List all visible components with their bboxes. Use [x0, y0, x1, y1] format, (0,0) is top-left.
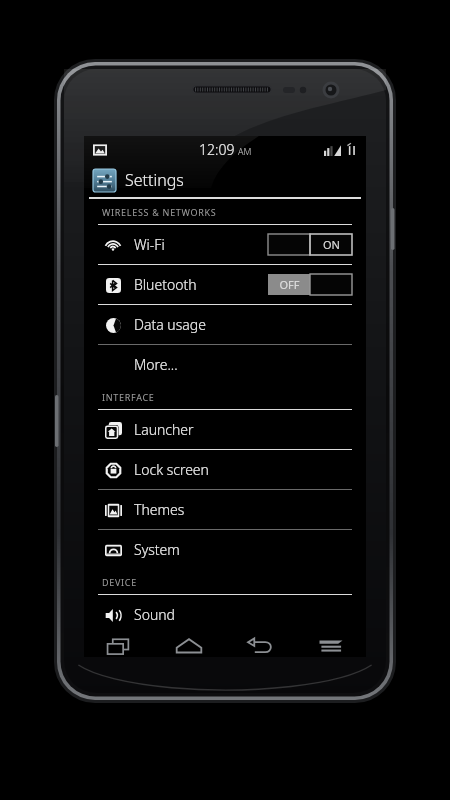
staticText: More...: [134, 355, 178, 374]
staticText: Launcher: [134, 420, 194, 439]
button[interactable]: Sound: [84, 595, 366, 634]
button[interactable]: Data usage: [84, 305, 366, 344]
staticText: Themes: [134, 500, 185, 519]
button[interactable]: Themes: [84, 490, 366, 529]
button[interactable]: More...: [84, 345, 366, 384]
staticText: 12:09: [199, 140, 235, 159]
button[interactable]: Switch on: [268, 234, 352, 255]
button[interactable]: Switch off: [268, 274, 352, 295]
staticText: ON: [323, 237, 340, 252]
staticText: WIRELESS & NETWORKS: [102, 206, 217, 218]
button[interactable]: Launcher: [84, 410, 366, 449]
button[interactable]: Recent apps: [84, 635, 154, 657]
staticText: Settings: [125, 169, 184, 191]
button[interactable]: Home: [154, 635, 224, 657]
button[interactable]: System: [84, 530, 366, 569]
staticText: Data usage: [134, 315, 206, 334]
staticText: Lock screen: [134, 460, 209, 479]
staticText: Wi-Fi: [134, 235, 165, 254]
staticText: AM: [238, 145, 252, 157]
staticText: OFF: [279, 277, 300, 292]
staticText: System: [134, 540, 180, 559]
button[interactable]: Bluetooth: [84, 265, 366, 304]
button[interactable]: Menu: [295, 635, 366, 657]
staticText: DEVICE: [102, 576, 137, 588]
button[interactable]: Back: [224, 635, 295, 657]
staticText: Sound: [134, 605, 175, 624]
button[interactable]: Settings: [84, 163, 366, 197]
staticText: INTERFACE: [102, 391, 155, 403]
button[interactable]: Wi-Fi: [84, 225, 366, 264]
button[interactable]: Lock screen: [84, 450, 366, 489]
staticText: Bluetooth: [134, 275, 197, 294]
